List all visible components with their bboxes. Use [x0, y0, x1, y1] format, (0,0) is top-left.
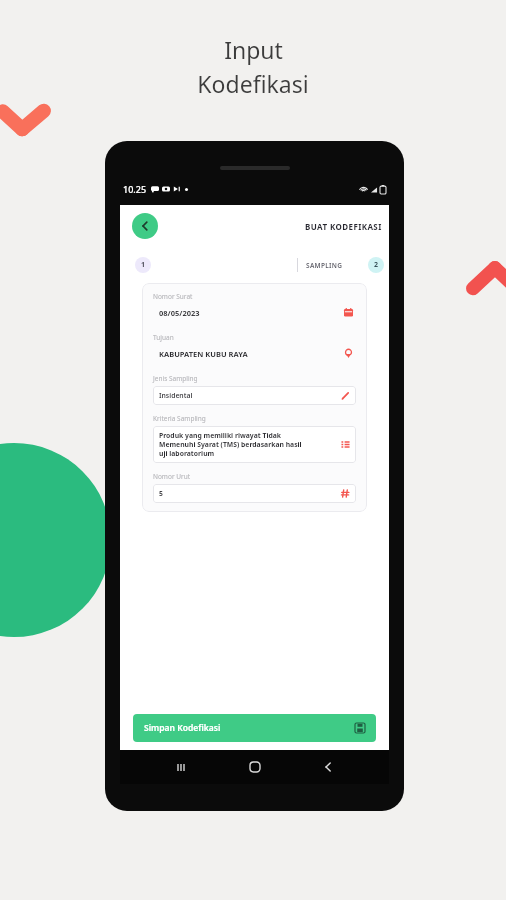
other: CALENDAR [344, 308, 353, 317]
staticText: 5 [159, 489, 163, 498]
button[interactable]: Back [132, 213, 158, 239]
button[interactable]: 2 [368, 257, 384, 273]
staticText: SAMPLING [306, 261, 343, 270]
staticText: Nomor Surat [153, 292, 193, 301]
button[interactable]: Simpan Kodefikasi [133, 714, 376, 742]
staticText: Produk yang memiliki riwayat Tidak [159, 431, 282, 440]
staticText: 08/05/2023 [159, 308, 344, 318]
staticText: Input [224, 34, 283, 65]
other: LIST [341, 440, 350, 449]
button[interactable]: Back [315, 754, 341, 780]
button[interactable]: Home [242, 754, 268, 780]
other: NUM [341, 489, 350, 498]
button[interactable]: 08/05/2023 [153, 303, 356, 322]
staticText: Simpan Kodefikasi [144, 722, 221, 734]
staticText: KABUPATEN KUBU RAYA [159, 349, 344, 359]
button[interactable]: Insidental [153, 386, 356, 405]
staticText: Kodefikasi [197, 68, 309, 99]
staticText: Insidental [159, 391, 193, 400]
button[interactable]: Recents [168, 754, 194, 780]
staticText: Jenis Sampling [153, 374, 198, 383]
staticText: Memenuhi Syarat (TMS) berdasarkan hasil [159, 440, 302, 449]
staticText: Nomor Urut [153, 472, 191, 481]
staticText: 10.25 [123, 183, 147, 195]
button[interactable]: 5 [153, 484, 356, 503]
button[interactable]: Produk yang memiliki riwayat Tidak [153, 426, 356, 463]
staticText: Kriteria Sampling [153, 414, 206, 423]
other: PENCIL [341, 391, 350, 400]
staticText: uji laboratorium [159, 449, 215, 458]
staticText: 2 [374, 260, 379, 270]
staticText: BUAT KODEFIKASI [305, 221, 382, 232]
staticText: 1 [141, 260, 146, 270]
button[interactable]: KABUPATEN KUBU RAYA [153, 344, 356, 363]
other: PIN [344, 349, 353, 358]
button[interactable]: 1 [135, 257, 151, 273]
staticText: Tujuan [153, 333, 174, 342]
